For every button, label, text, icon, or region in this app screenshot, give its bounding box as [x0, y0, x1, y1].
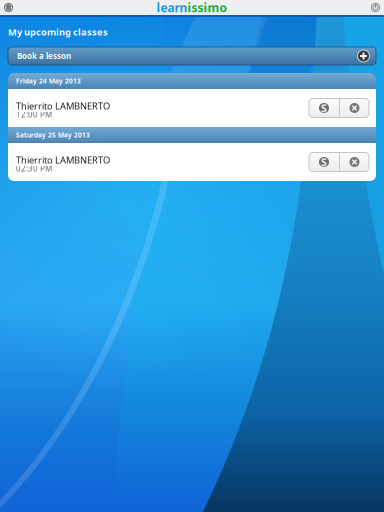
staticText: learn — [156, 0, 187, 15]
staticText: S — [321, 155, 327, 169]
button[interactable]: Book a lesson — [8, 47, 376, 65]
button[interactable]: Call on Skype — [309, 152, 339, 171]
staticText: 02:30 PM — [16, 163, 52, 174]
button[interactable]: Home — [0, 1, 17, 14]
button[interactable]: Call on Skype — [309, 98, 339, 117]
button[interactable]: Cancel lesson — [340, 98, 369, 117]
staticText: Thierrito LAMBNERTO — [16, 100, 110, 112]
button[interactable]: Cancel lesson — [340, 152, 369, 171]
button[interactable]: Log out — [367, 1, 384, 14]
staticText: Thierrito LAMBNERTO — [16, 154, 110, 166]
staticText: Book a lesson — [17, 51, 71, 61]
staticText: 12:00 PM — [16, 109, 52, 120]
staticText: My upcoming classes — [8, 26, 108, 38]
staticText: issimo — [187, 0, 227, 15]
staticText: S — [321, 101, 327, 115]
staticText: Saturday 25 May 2013 — [16, 131, 90, 139]
staticText: Friday 24 May 2013 — [16, 77, 81, 85]
